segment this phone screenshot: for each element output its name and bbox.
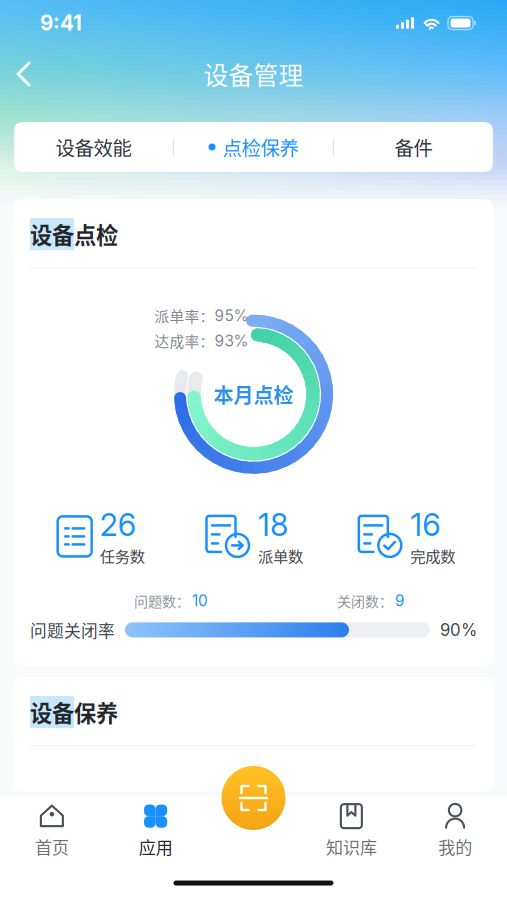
staticText: 95% [214, 306, 248, 325]
staticText: 保养 [74, 696, 118, 728]
staticText: 设备 [30, 696, 74, 728]
staticText: 设备效能 [55, 133, 131, 161]
button[interactable]: 16 [356, 506, 455, 566]
button[interactable]: 备件 [334, 122, 493, 172]
staticText: 18 [258, 506, 288, 543]
staticText: 问题数： [134, 591, 190, 611]
staticText: 完成数 [410, 544, 455, 566]
staticText: 16 [410, 506, 440, 543]
button[interactable]: 设备效能 [14, 122, 173, 172]
staticText: 设备 [30, 218, 74, 250]
staticText: 90% [440, 620, 477, 640]
staticText: 派单率： [154, 305, 214, 326]
staticText: 问题关闭率 [30, 618, 115, 642]
button[interactable]: 首页 [0, 799, 104, 863]
button[interactable]: Scan [217, 762, 289, 834]
staticText: 首页 [35, 834, 69, 859]
staticText: 10 [192, 591, 208, 610]
staticText: 达成率： [154, 330, 214, 351]
button[interactable]: 点检保养 [174, 122, 333, 172]
staticText: 93% [214, 332, 248, 350]
staticText: 应用 [139, 834, 173, 859]
button[interactable]: 26 [58, 506, 145, 566]
staticText: 我的 [438, 834, 472, 859]
staticText: 点检 [74, 218, 118, 250]
staticText: 本月点检 [213, 380, 293, 409]
button[interactable]: 应用 [104, 799, 208, 863]
staticText: 知识库 [326, 834, 377, 859]
button[interactable]: 知识库 [299, 799, 403, 863]
button[interactable]: 我的 [403, 799, 507, 863]
button[interactable]: 18 [204, 506, 303, 566]
staticText: 9 [395, 591, 405, 610]
button[interactable]: Back [0, 50, 47, 98]
staticText: 点检保养 [222, 133, 298, 161]
staticText: 设备管理 [203, 56, 303, 92]
staticText: 关闭数： [337, 591, 393, 611]
staticText: 派单数 [258, 544, 303, 566]
staticText: 9:41 [40, 10, 82, 35]
staticText: 任务数 [100, 544, 145, 566]
staticText: 26 [100, 506, 136, 543]
staticText: 备件 [394, 133, 432, 161]
